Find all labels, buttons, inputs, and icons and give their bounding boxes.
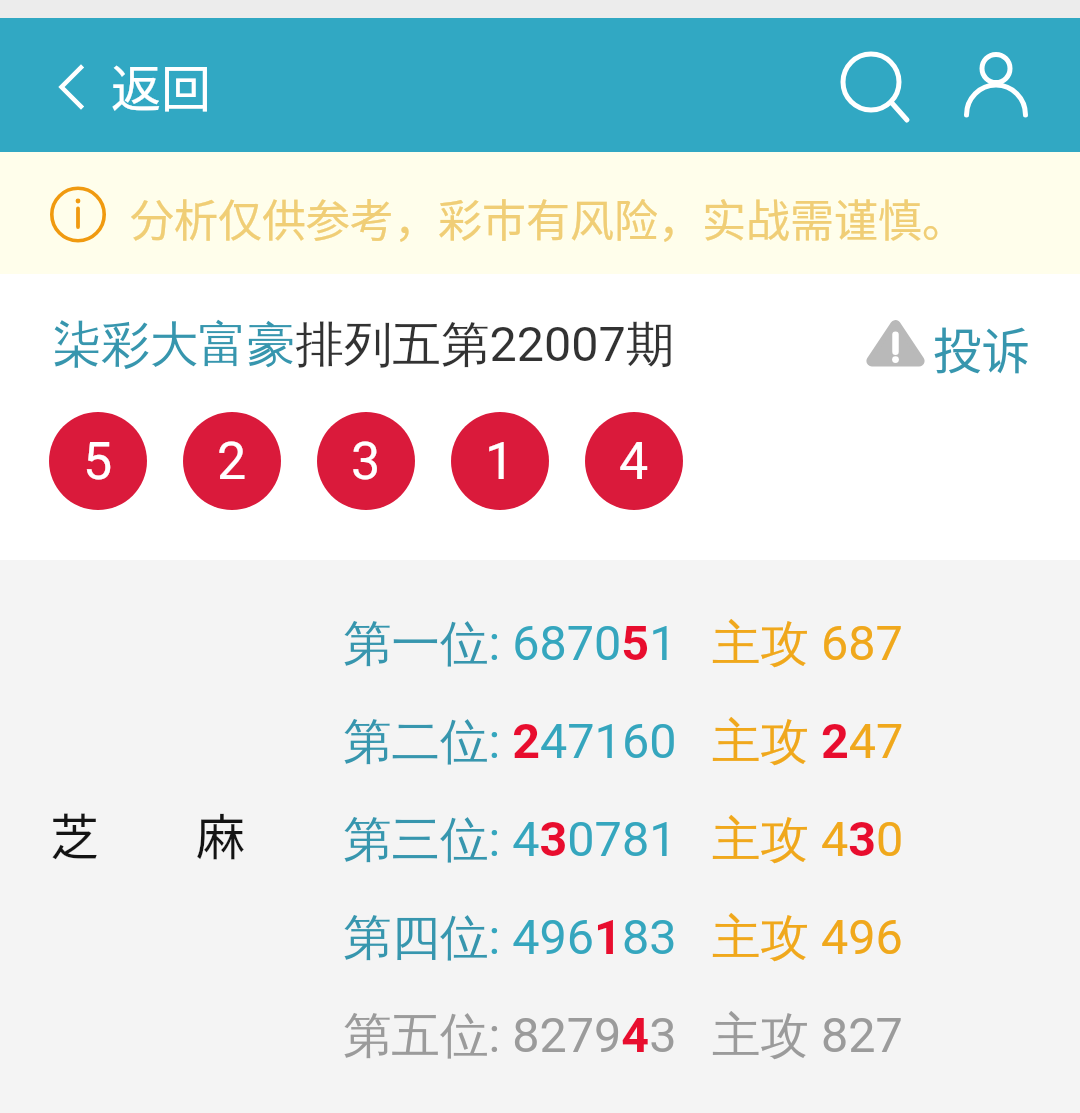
- staticText: 主攻 827: [712, 1005, 903, 1066]
- staticText: 第二位: 247160: [343, 711, 677, 772]
- staticText: 主攻 430: [712, 809, 904, 870]
- staticText: 第一位: 687051: [343, 613, 677, 674]
- staticText: 返回: [111, 49, 211, 121]
- button[interactable]: 返回: [40, 42, 230, 128]
- staticText: 5: [83, 431, 113, 492]
- button[interactable]: 第五位: 827943: [343, 1005, 903, 1066]
- staticText: 主攻 247: [712, 711, 904, 772]
- button[interactable]: 5: [49, 412, 147, 510]
- button[interactable]: 投诉: [857, 308, 1031, 376]
- staticText: 主攻 496: [712, 907, 903, 968]
- button[interactable]: Account: [942, 30, 1050, 140]
- staticText: 芝: [50, 798, 100, 869]
- staticText: 麻: [196, 798, 246, 869]
- button[interactable]: Search: [816, 27, 932, 145]
- staticText: 1: [485, 431, 515, 492]
- staticText: 柒彩大富豪排列五第22007期: [53, 314, 675, 375]
- button[interactable]: 3: [317, 412, 415, 510]
- staticText: 第三位: 430781: [343, 809, 677, 870]
- staticText: 投诉: [933, 313, 1031, 381]
- button[interactable]: 第二位: 247160: [343, 711, 904, 772]
- staticText: 主攻 687: [712, 613, 903, 674]
- staticText: 第五位: 827943: [343, 1005, 677, 1066]
- button[interactable]: 第一位: 687051: [343, 613, 903, 674]
- staticText: 2: [217, 431, 247, 492]
- button[interactable]: 1: [451, 412, 549, 510]
- button[interactable]: 2: [183, 412, 281, 510]
- staticText: 分析仅供参考，彩市有风险，实战需谨慎。: [130, 186, 966, 250]
- button[interactable]: 第三位: 430781: [343, 809, 904, 870]
- staticText: 3: [351, 431, 381, 492]
- staticText: 4: [619, 431, 649, 492]
- button[interactable]: 4: [585, 412, 683, 510]
- staticText: 第四位: 496183: [343, 907, 677, 968]
- button[interactable]: 第四位: 496183: [343, 907, 903, 968]
